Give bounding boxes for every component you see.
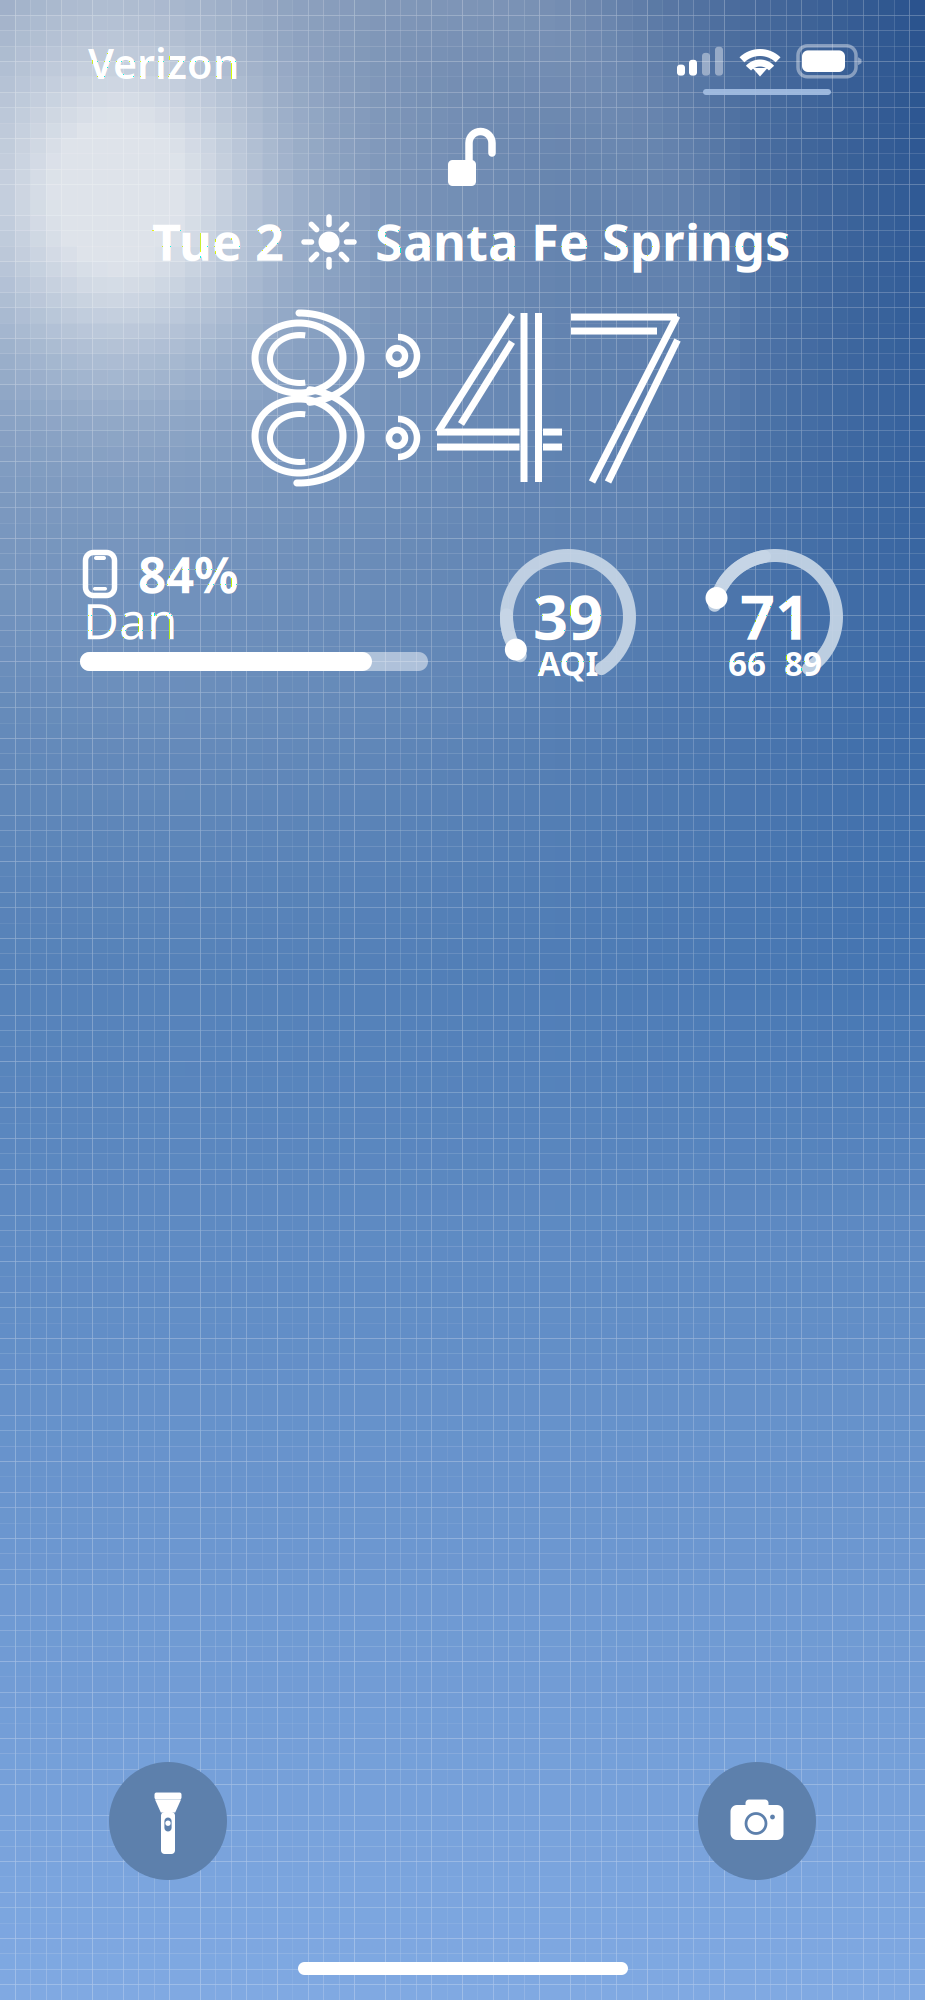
button[interactable]: Flashlight — [109, 1762, 227, 1880]
staticText: 66 89 — [728, 641, 822, 685]
staticText: AQI — [537, 641, 598, 685]
button[interactable]: Camera — [698, 1762, 816, 1880]
staticText: Dan — [83, 587, 177, 653]
staticText: Verizon — [88, 36, 239, 90]
staticText: 39 — [533, 575, 603, 657]
staticText: Santa Fe Springs — [375, 207, 790, 275]
staticText: 84% — [138, 541, 238, 607]
staticText: 71 — [740, 575, 810, 657]
staticText: Tue 2 — [152, 207, 284, 275]
